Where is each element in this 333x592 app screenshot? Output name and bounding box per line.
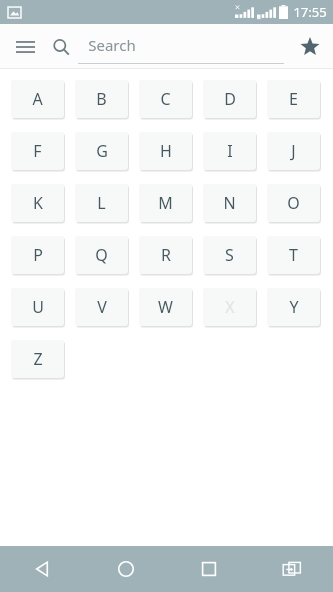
button[interactable]: O: [267, 184, 320, 222]
staticText: P: [33, 244, 43, 266]
staticText: N: [223, 192, 236, 214]
button[interactable]: N: [203, 184, 256, 222]
staticText: X: [225, 296, 235, 318]
button[interactable]: Switch apps: [250, 546, 333, 592]
button[interactable]: M: [139, 184, 192, 222]
staticText: W: [158, 296, 173, 318]
staticText: V: [97, 296, 107, 318]
staticText: B: [96, 88, 107, 110]
button[interactable]: Favorites: [291, 28, 329, 66]
button[interactable]: Menu: [6, 28, 44, 66]
button[interactable]: Q: [75, 236, 128, 274]
button[interactable]: B: [75, 80, 128, 118]
staticText: Search: [88, 35, 136, 55]
staticText: G: [96, 140, 108, 162]
button[interactable]: T: [267, 236, 320, 274]
staticText: I: [227, 140, 233, 162]
button[interactable]: K: [11, 184, 64, 222]
button[interactable]: Recents: [167, 546, 250, 592]
staticText: U: [32, 296, 44, 318]
staticText: F: [33, 140, 42, 162]
button[interactable]: L: [75, 184, 128, 222]
staticText: O: [287, 192, 300, 214]
button[interactable]: Back: [0, 546, 84, 592]
button[interactable]: V: [75, 288, 128, 326]
button[interactable]: Search: [78, 32, 284, 64]
button[interactable]: U: [11, 288, 64, 326]
button[interactable]: J: [267, 132, 320, 170]
button[interactable]: I: [203, 132, 256, 170]
staticText: 17:55: [293, 3, 327, 21]
staticText: J: [291, 140, 296, 162]
button[interactable]: G: [75, 132, 128, 170]
button[interactable]: D: [203, 80, 256, 118]
button[interactable]: A: [11, 80, 64, 118]
button[interactable]: R: [139, 236, 192, 274]
button[interactable]: C: [139, 80, 192, 118]
staticText: Y: [289, 296, 299, 318]
staticText: K: [33, 192, 43, 214]
staticText: L: [97, 192, 106, 214]
button[interactable]: S: [203, 236, 256, 274]
staticText: S: [225, 244, 234, 266]
button[interactable]: P: [11, 236, 64, 274]
staticText: T: [289, 244, 298, 266]
staticText: A: [32, 88, 43, 110]
staticText: Z: [33, 348, 43, 370]
button[interactable]: E: [267, 80, 320, 118]
staticText: C: [160, 88, 171, 110]
staticText: Q: [95, 244, 108, 266]
staticText: E: [289, 88, 298, 110]
staticText: H: [160, 140, 172, 162]
button[interactable]: W: [139, 288, 192, 326]
button[interactable]: H: [139, 132, 192, 170]
button[interactable]: Search: [44, 30, 78, 64]
button[interactable]: Home: [84, 546, 167, 592]
button[interactable]: Z: [11, 340, 64, 378]
button[interactable]: Y: [267, 288, 320, 326]
staticText: D: [224, 88, 236, 110]
staticText: R: [161, 244, 171, 266]
staticText: M: [158, 192, 173, 214]
button[interactable]: F: [11, 132, 64, 170]
